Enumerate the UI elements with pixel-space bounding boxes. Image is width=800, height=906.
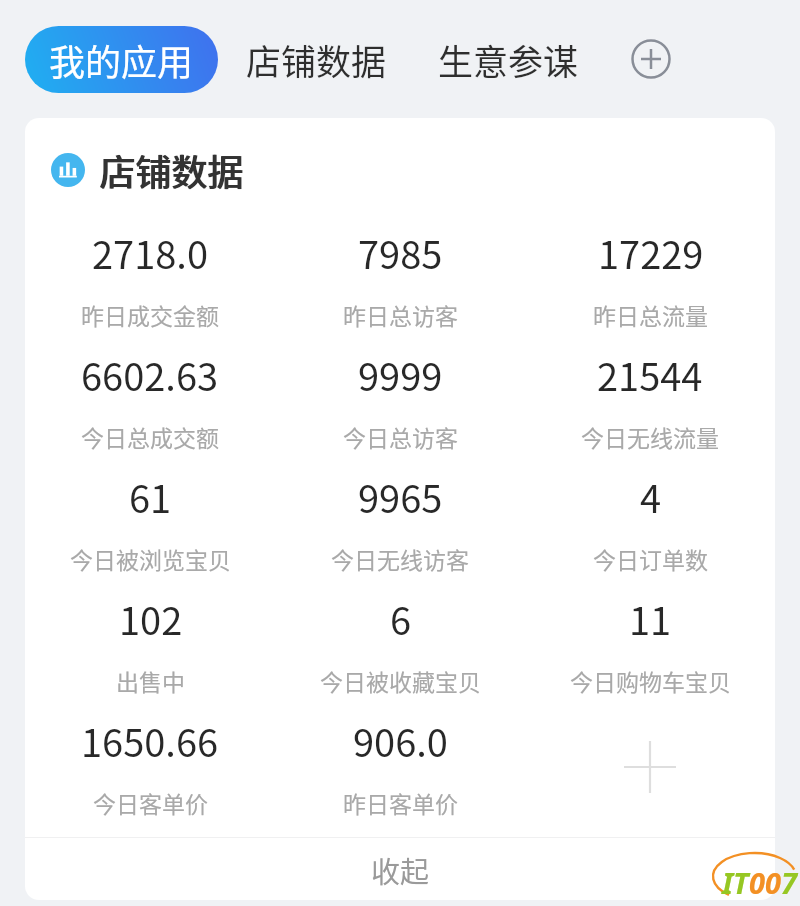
- button[interactable]: 102: [25, 586, 275, 708]
- button[interactable]: 906.0: [275, 708, 525, 830]
- staticText: 生意参谋: [438, 34, 579, 85]
- staticText: 6: [390, 591, 412, 646]
- button[interactable]: 4: [525, 464, 775, 586]
- button[interactable]: 61: [25, 464, 275, 586]
- staticText: 店铺数据: [100, 144, 245, 196]
- staticText: 昨日总流量: [593, 298, 708, 331]
- button[interactable]: 9999: [275, 342, 525, 464]
- button[interactable]: 7985: [275, 220, 525, 342]
- staticText: 906.0: [353, 713, 448, 768]
- button[interactable]: 17229: [525, 220, 775, 342]
- button[interactable]: 我的应用: [25, 26, 218, 93]
- staticText: 1650.66: [81, 713, 219, 768]
- staticText: 7985: [358, 225, 443, 280]
- button[interactable]: 1650.66: [25, 708, 275, 830]
- button[interactable]: Add: [628, 36, 674, 82]
- button[interactable]: 6: [275, 586, 525, 708]
- staticText: 2718.0: [92, 225, 209, 280]
- staticText: 6602.63: [81, 347, 219, 402]
- staticText: 昨日成交金额: [81, 298, 219, 331]
- staticText: 今日被收藏宝贝: [320, 664, 481, 697]
- staticText: 收起: [371, 849, 430, 891]
- staticText: 昨日客单价: [343, 786, 458, 819]
- button[interactable]: 21544: [525, 342, 775, 464]
- staticText: 17229: [598, 225, 704, 280]
- staticText: 我的应用: [49, 34, 194, 86]
- staticText: 102: [119, 591, 183, 646]
- staticText: 今日无线流量: [581, 420, 719, 453]
- staticText: 7: [781, 863, 797, 902]
- button[interactable]: 店铺数据: [246, 34, 387, 85]
- staticText: 今日订单数: [593, 542, 708, 575]
- staticText: 今日总访客: [343, 420, 458, 453]
- button[interactable]: 6602.63: [25, 342, 275, 464]
- staticText: 今日客单价: [93, 786, 208, 819]
- button[interactable]: 收起: [25, 840, 775, 900]
- button[interactable]: 11: [525, 586, 775, 708]
- staticText: 今日购物车宝贝: [570, 664, 731, 697]
- staticText: 店铺数据: [246, 34, 387, 85]
- staticText: 00: [749, 863, 781, 902]
- button[interactable]: 9965: [275, 464, 525, 586]
- staticText: IT: [722, 863, 749, 902]
- staticText: 今日被浏览宝贝: [70, 542, 231, 575]
- staticText: 昨日总访客: [343, 298, 458, 331]
- staticText: 9999: [358, 347, 443, 402]
- button[interactable]: 生意参谋: [438, 34, 579, 85]
- staticText: 今日无线访客: [331, 542, 469, 575]
- staticText: 今日总成交额: [81, 420, 219, 453]
- staticText: 4: [640, 469, 662, 524]
- staticText: 出售中: [116, 664, 185, 697]
- staticText: 21544: [597, 347, 703, 402]
- staticText: 11: [629, 591, 672, 646]
- staticText: 店铺数据: [99, 144, 244, 196]
- staticText: 9965: [358, 469, 443, 524]
- button[interactable]: 2718.0: [25, 220, 275, 342]
- staticText: 61: [129, 469, 172, 524]
